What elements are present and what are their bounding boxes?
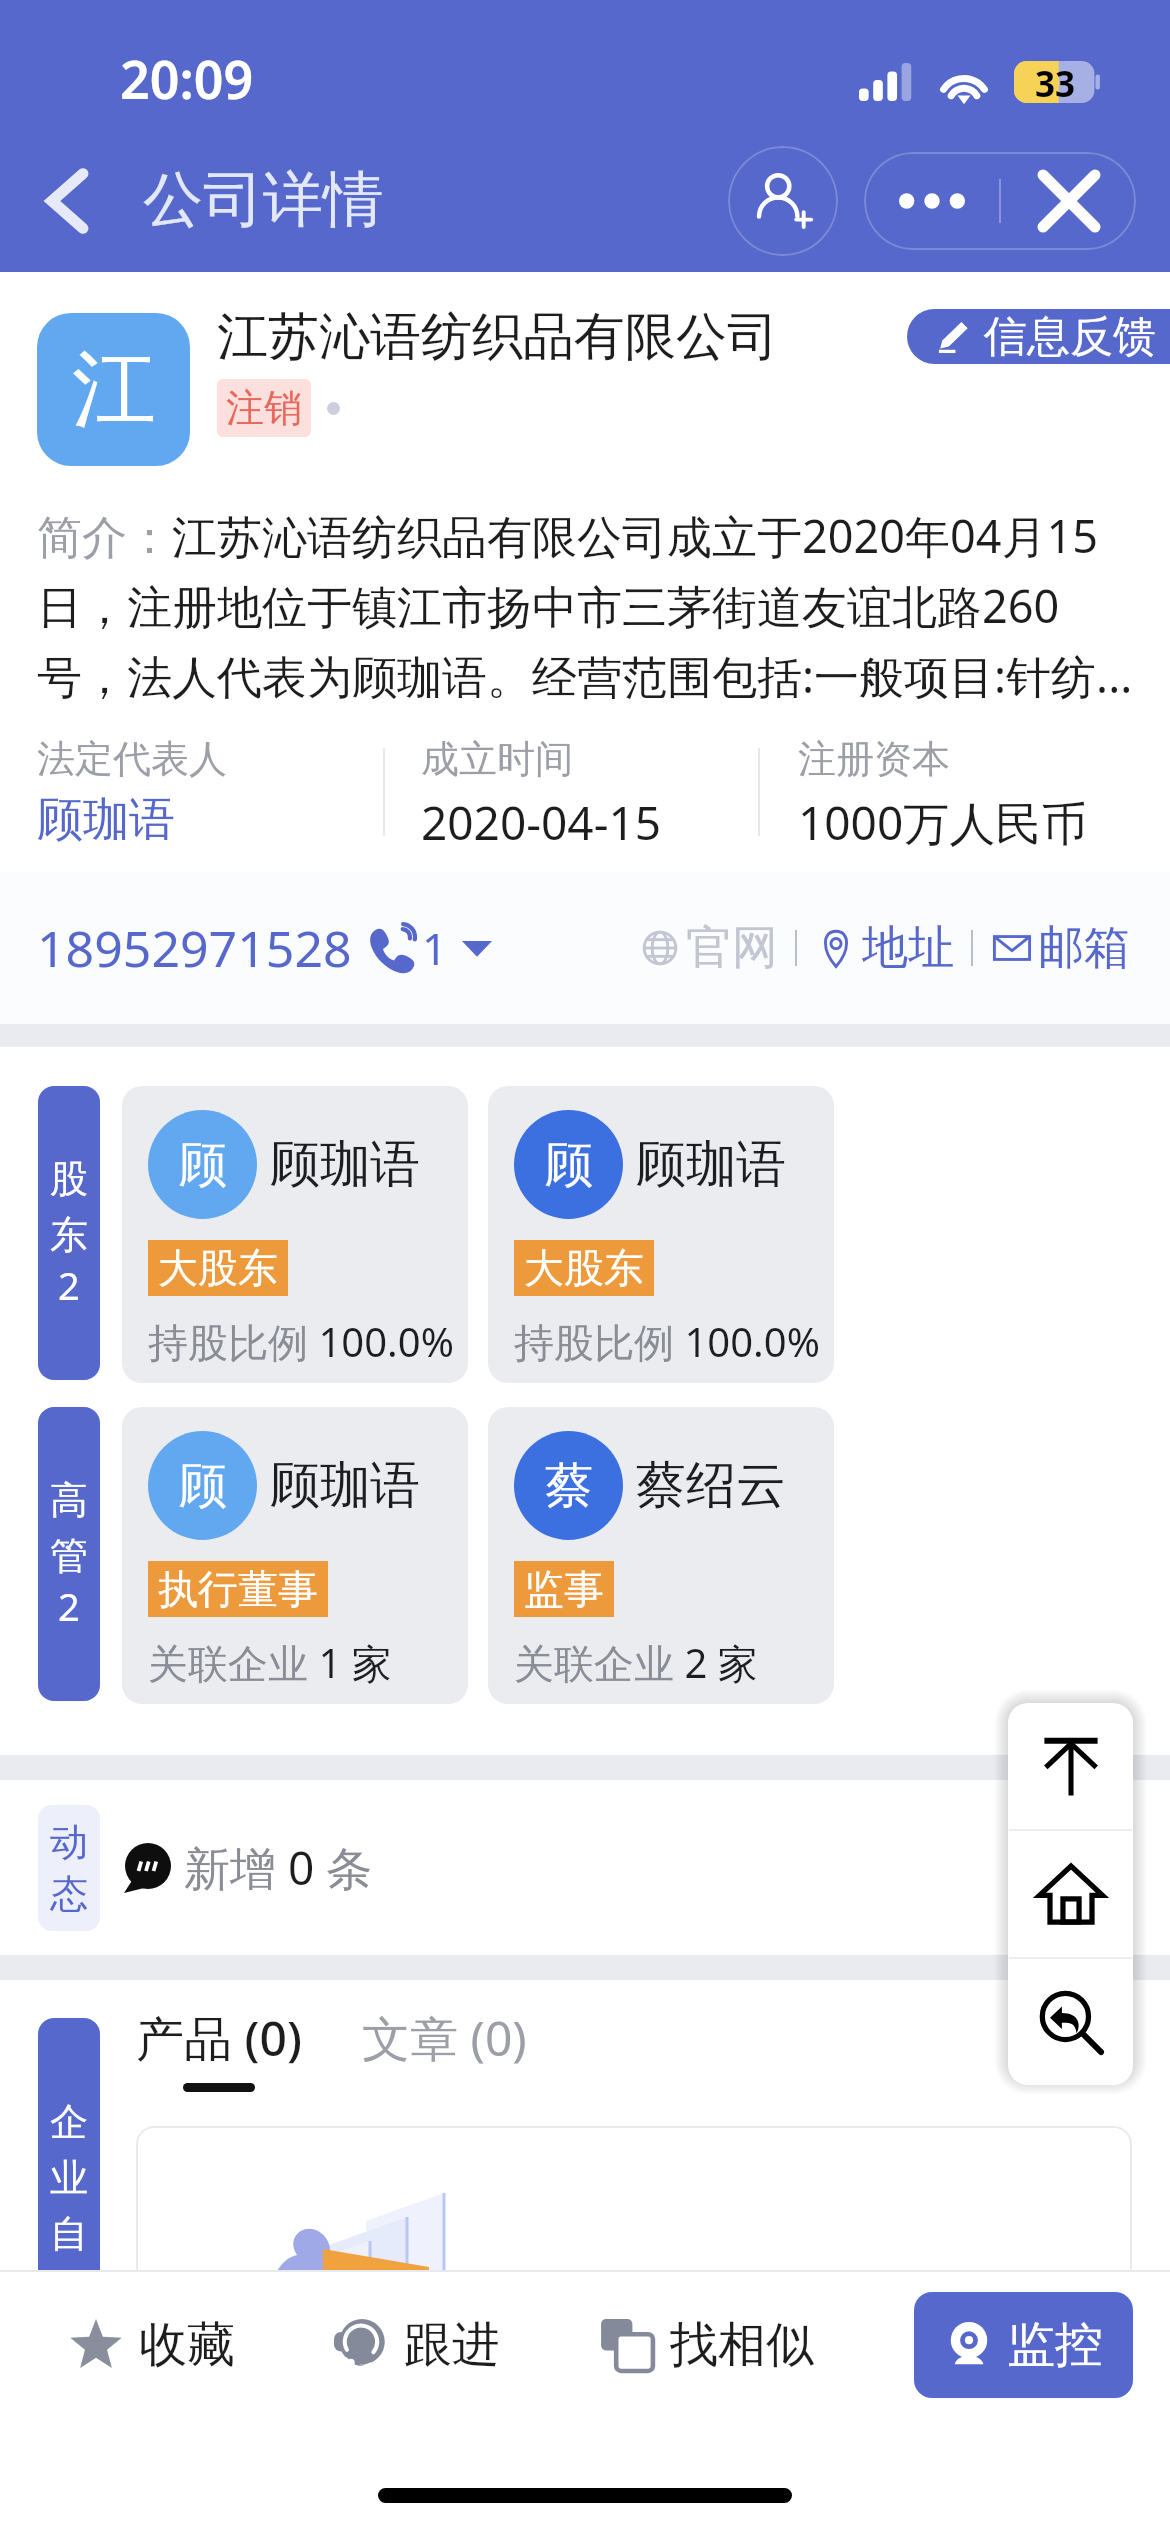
staticText: 注册资本	[798, 735, 950, 783]
staticText: 大股东	[524, 1243, 644, 1293]
staticText: 监控	[1007, 2315, 1103, 2375]
button[interactable]: 文章 (0)	[362, 2005, 527, 2071]
staticText: 注销	[226, 384, 302, 432]
staticText: 顾	[179, 1135, 227, 1195]
staticText: 持股比例 100.0%	[514, 1314, 820, 1369]
staticText: 顾珈语	[270, 1454, 420, 1517]
staticText: 动态	[38, 1818, 100, 1918]
button[interactable]: Home	[1008, 1831, 1133, 1957]
button[interactable]: 顾	[488, 1086, 834, 1383]
staticText: 成立时间	[421, 735, 573, 783]
button[interactable]: 公司详情	[143, 163, 383, 239]
staticText: 找相似	[670, 2315, 814, 2375]
staticText: 顾	[179, 1456, 227, 1516]
staticText: 1000万人民币	[798, 791, 1088, 849]
staticText: 持股比例 100.0%	[148, 1314, 454, 1369]
button[interactable]: 成立时间	[421, 735, 758, 849]
staticText: 股东	[38, 1155, 100, 1259]
button[interactable]: 顾	[122, 1407, 468, 1704]
button[interactable]: 企业自主	[38, 2018, 100, 2438]
button[interactable]: Search history	[1008, 1959, 1133, 2085]
staticText: 高管	[38, 1476, 100, 1580]
staticText: 2020-04-15	[421, 791, 662, 849]
button[interactable]: 顾	[122, 1086, 468, 1383]
staticText: 1	[422, 918, 448, 978]
button[interactable]: 江苏沁语纺织品有限公司	[217, 305, 778, 369]
button[interactable]: 监控	[914, 2292, 1133, 2398]
button[interactable]: 江	[37, 313, 190, 466]
staticText: 关联企业 1 家	[148, 1635, 392, 1690]
button[interactable]: 地址	[814, 919, 954, 977]
staticText: 顾珈语	[636, 1133, 786, 1196]
staticText: 蔡绍云	[636, 1454, 786, 1517]
staticText: 收藏	[139, 2315, 235, 2375]
button[interactable]: 注册资本	[798, 735, 1133, 849]
staticText: 执行董事	[158, 1564, 318, 1614]
staticText: 2	[58, 1259, 80, 1311]
staticText: 信息反馈	[984, 310, 1156, 364]
staticText: 江	[72, 337, 156, 443]
button[interactable]: 18952971528	[37, 914, 492, 982]
button[interactable]: 注销	[217, 379, 311, 437]
button[interactable]: 官网	[638, 919, 778, 977]
staticText: 邮箱	[1038, 919, 1130, 977]
button[interactable]: 股东	[38, 1086, 100, 1380]
staticText: 法定代表人	[37, 735, 227, 783]
staticText: 大股东	[158, 1243, 278, 1293]
button[interactable]: 找相似	[600, 2315, 814, 2375]
staticText: 跟进	[404, 2315, 500, 2375]
button[interactable]: Back	[0, 130, 134, 272]
button[interactable]: 产品 (0)	[136, 2005, 302, 2071]
button[interactable]: 邮箱	[990, 919, 1130, 977]
button[interactable]: 收藏	[69, 2315, 235, 2375]
staticText: 官网	[686, 919, 778, 977]
button[interactable]: Close	[1001, 152, 1136, 250]
button[interactable]: 动态	[38, 1805, 100, 1931]
button[interactable]: 新增 0 条	[122, 1836, 373, 1899]
staticText: 33	[1035, 60, 1076, 102]
staticText: 关联企业 2 家	[514, 1635, 758, 1690]
button[interactable]: 法定代表人	[37, 735, 383, 849]
button[interactable]: More options	[864, 152, 999, 250]
staticText: 顾珈语	[270, 1133, 420, 1196]
staticText: 地址	[862, 919, 954, 977]
staticText: 顾	[545, 1135, 593, 1195]
staticText: 监事	[524, 1564, 604, 1614]
button[interactable]: 跟进	[334, 2315, 500, 2375]
staticText: 新增 0 条	[184, 1836, 373, 1899]
staticText: 蔡	[545, 1456, 593, 1516]
button[interactable]: 高管	[38, 1407, 100, 1701]
button[interactable]: 蔡	[488, 1407, 834, 1704]
staticText: 顾珈语	[37, 791, 175, 849]
staticText: 企业自主	[38, 2098, 100, 2314]
button[interactable]: Add contact	[728, 146, 838, 256]
button[interactable]: Scroll to top	[1008, 1703, 1133, 1829]
staticText: 18952971528	[37, 914, 352, 982]
button[interactable]: 信息反馈	[907, 309, 1170, 364]
staticText: 2	[58, 1580, 80, 1632]
button[interactable]: 简介：江苏沁语纺织品有限公司成立于2020年04月15日，注册地位于镇江市扬中市…	[37, 505, 1133, 706]
staticText: 20:09	[120, 43, 254, 114]
